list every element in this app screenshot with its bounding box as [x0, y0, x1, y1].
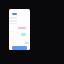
button[interactable]: Send [12, 46, 27, 50]
button[interactable]: Message [12, 13, 17, 15]
